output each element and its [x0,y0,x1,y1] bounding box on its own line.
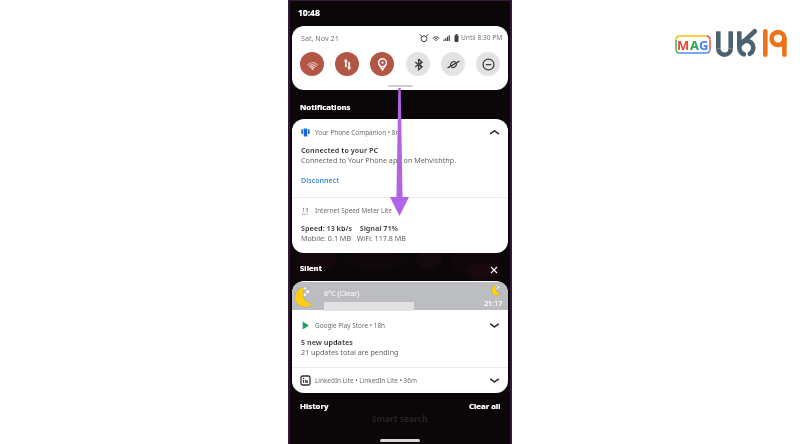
staticText: Disconnect [301,175,340,185]
button[interactable]: History [300,401,329,412]
staticText: G [699,36,709,54]
staticText: 10:48 [298,7,320,19]
staticText: Smart search [372,413,428,425]
staticText: Google Play Store • 18h [315,321,386,330]
staticText: 21 updates total are pending [301,347,399,357]
staticText: 13 [302,206,309,213]
staticText: 5 new updates [301,337,353,347]
button[interactable]: Mobile data [335,52,359,76]
staticText: History [300,401,329,412]
button[interactable]: Bluetooth [406,52,430,76]
button[interactable]: LinkedIn Lite • LinkedIn Lite • 36m [292,375,508,386]
staticText: Kb/s [302,213,309,215]
button[interactable]: 6°C (Clear) [292,282,508,310]
staticText: 6°C (Clear) [324,288,360,298]
staticText: Internet Speed Meter Lite [315,206,392,215]
staticText: Silent [300,263,323,274]
button[interactable]: Clear all [469,401,501,412]
button[interactable]: Google Play Store • 18h [292,320,508,331]
staticText: Connected to Your Phone app on Mehvishth… [301,155,457,165]
button[interactable]: Location [370,52,394,76]
staticText: Speed: 13 kb/s Signal 71% [301,223,399,233]
staticText: Mobile: 0.1 MB WiFi: 117.8 MB [301,233,407,243]
button[interactable]: Do not disturb [476,52,500,76]
staticText: LinkedIn Lite • LinkedIn Lite • 36m [315,376,417,385]
staticText: M [677,36,690,54]
button[interactable]: Wi-Fi [300,52,324,76]
button[interactable]: Your Phone Companion • 8m [292,127,508,138]
staticText: Your Phone Companion • 8m [315,128,402,137]
staticText: Until 8:30 PM [461,33,503,42]
staticText: Notifications [300,102,351,113]
staticText: Connected to your PC [301,145,379,155]
staticText: 21:17 [484,298,503,308]
button[interactable]: Auto rotate [441,52,465,76]
staticText: Sat, Nov 21 [301,33,339,43]
button[interactable]: Close silent notifications [487,263,500,276]
button[interactable]: 13 [292,205,508,216]
staticText: A [690,36,699,54]
button[interactable]: Disconnect [301,175,340,185]
staticText: Clear all [469,401,501,412]
